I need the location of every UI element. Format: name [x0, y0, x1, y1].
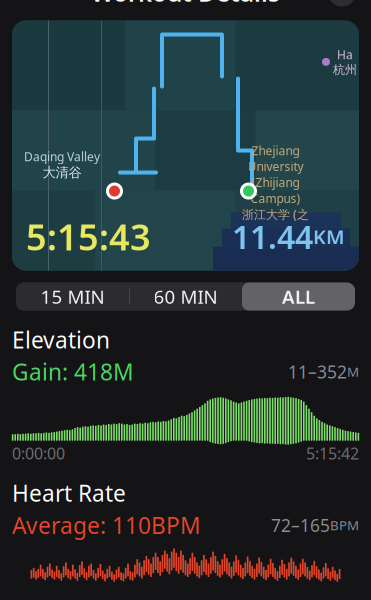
- staticText: Workout Details: [91, 0, 280, 8]
- staticText: 浙江大学 (之: [242, 206, 309, 222]
- staticText: KM: [313, 223, 345, 250]
- staticText: 5:15:43: [26, 213, 151, 260]
- staticText: 60 MIN: [153, 284, 217, 309]
- staticText: 11–352: [288, 360, 347, 383]
- staticText: 杭州: [333, 62, 357, 77]
- staticText: Elevation: [12, 324, 110, 355]
- staticText: Daqing Valley: [24, 148, 100, 164]
- staticText: Gain: 418M: [12, 357, 134, 387]
- staticText: Average: 110BPM: [12, 510, 201, 540]
- button[interactable]: ALL: [242, 282, 355, 310]
- staticText: Ha: [337, 46, 353, 62]
- staticText: 11.44: [232, 215, 313, 258]
- staticText: (Zhijiang: [251, 174, 299, 190]
- button[interactable]: Close: [325, 0, 359, 9]
- staticText: 0:00:00: [12, 443, 65, 464]
- staticText: 大清谷: [42, 164, 81, 181]
- button[interactable]: 15 MIN: [16, 282, 129, 310]
- staticText: Heart Rate: [12, 478, 126, 508]
- staticText: BPM: [330, 516, 359, 534]
- staticText: 15 MIN: [40, 284, 104, 309]
- staticText: Campus): [250, 190, 300, 206]
- staticText: M: [347, 363, 359, 380]
- staticText: 72–165: [271, 514, 330, 537]
- staticText: Zhejiang: [251, 142, 299, 158]
- staticText: 5:15:42: [306, 443, 359, 464]
- staticText: ALL: [282, 284, 315, 309]
- button[interactable]: 60 MIN: [129, 282, 242, 310]
- staticText: University: [247, 158, 303, 174]
